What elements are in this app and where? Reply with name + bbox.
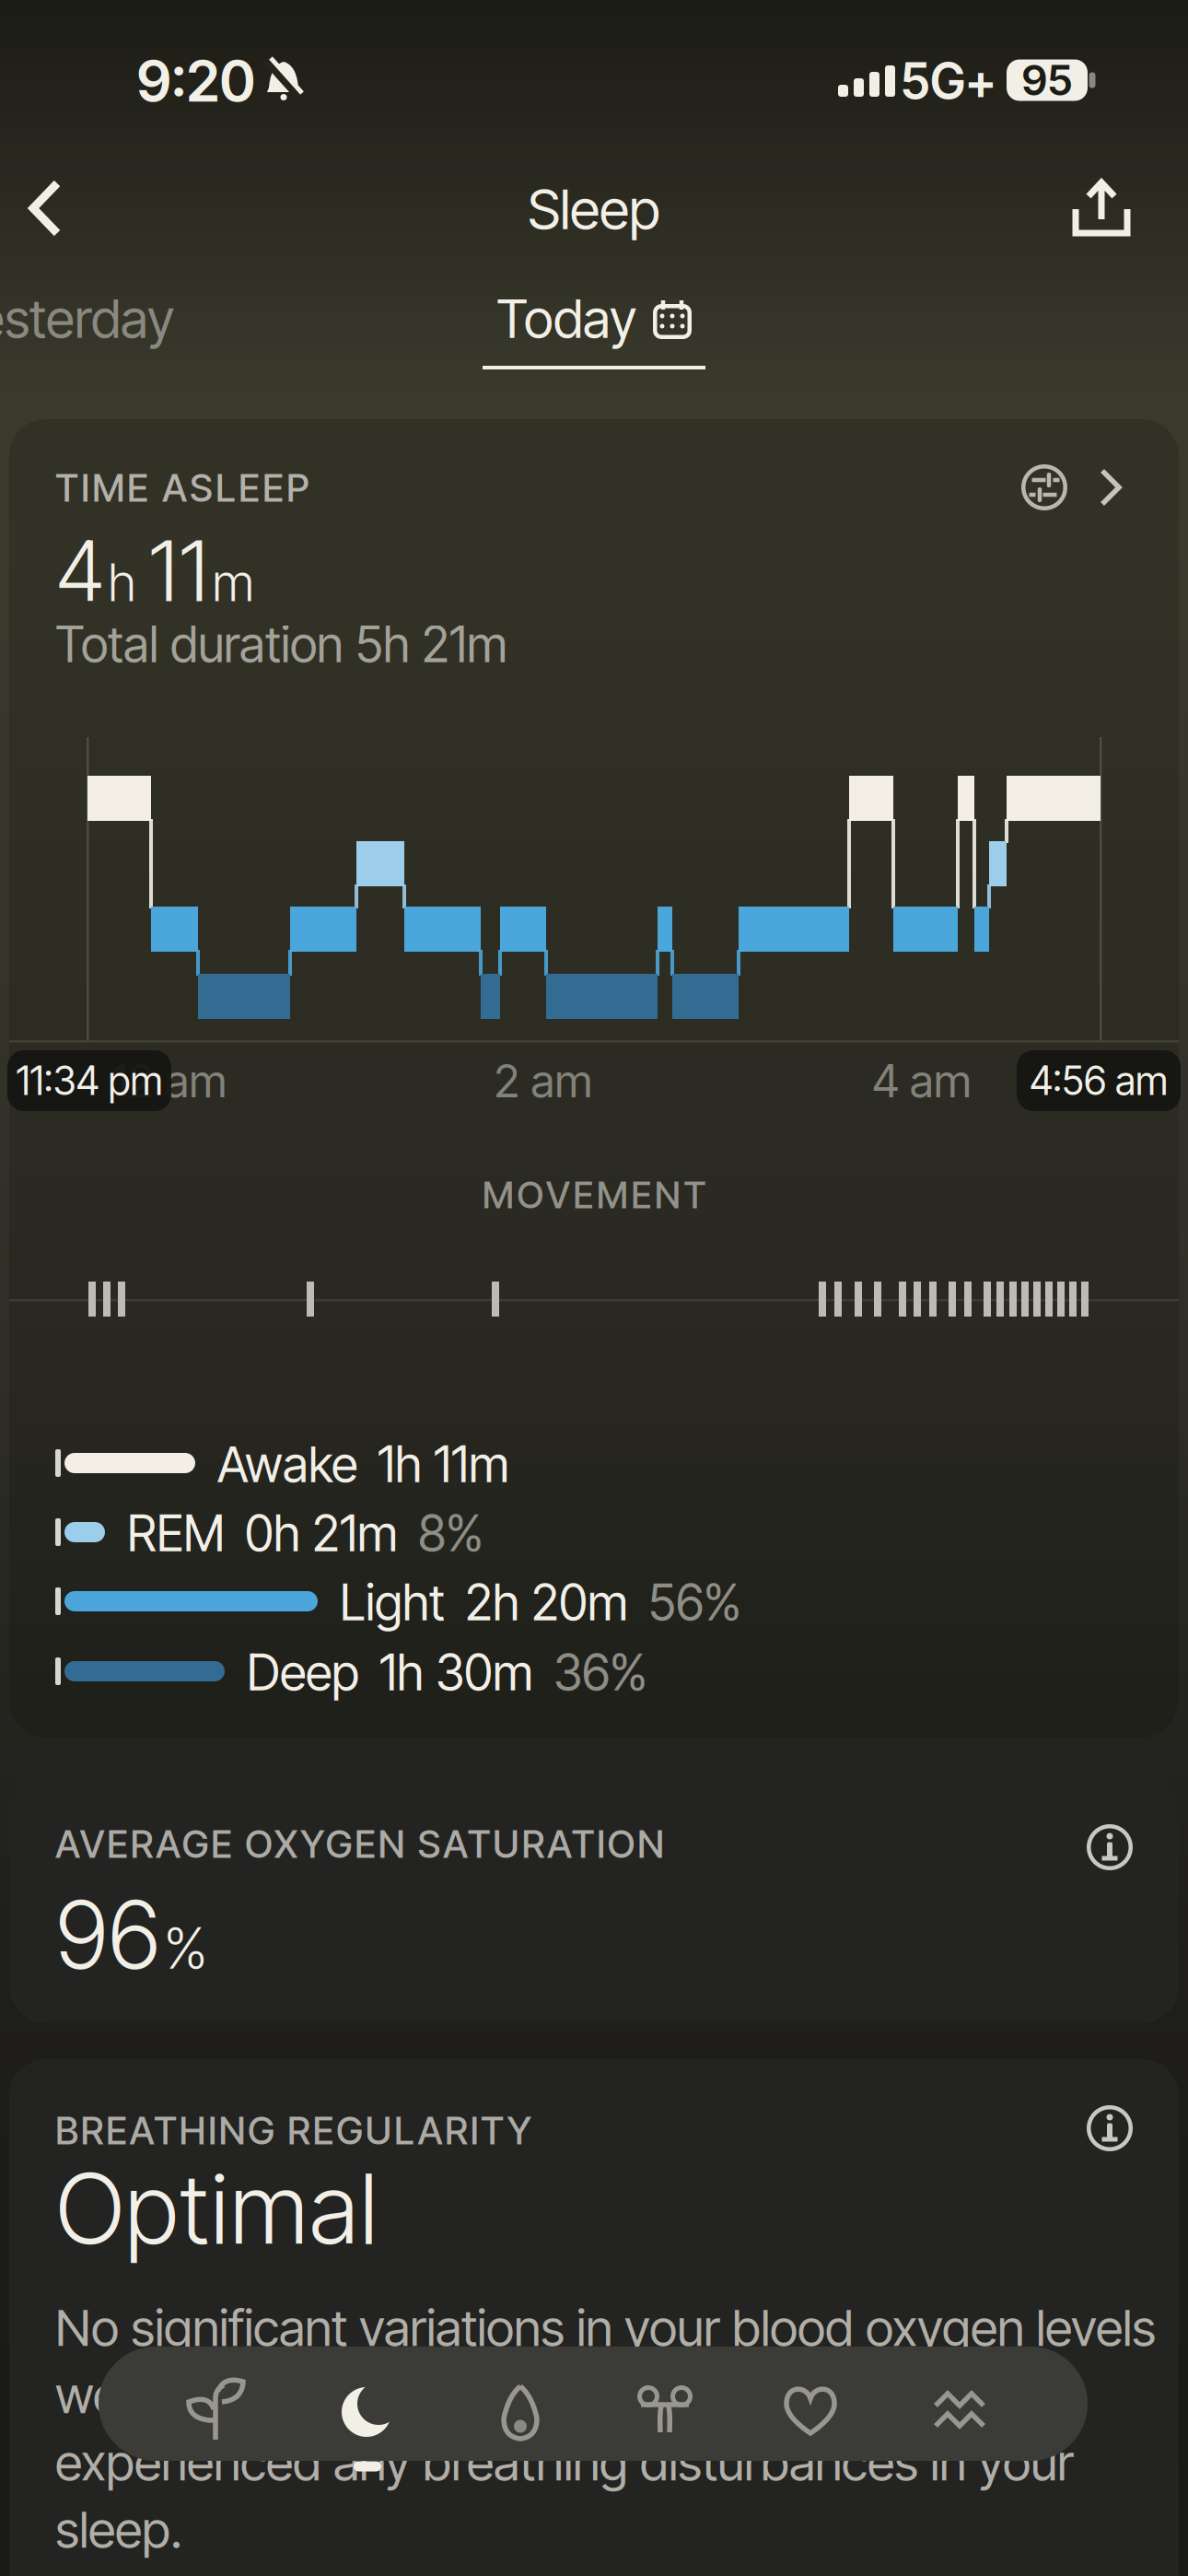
button[interactable]: Back [17, 172, 88, 244]
staticText: 12 am [112, 1054, 227, 1108]
staticText: 1h 30m [379, 1644, 533, 1702]
button[interactable]: Heart [769, 2361, 852, 2463]
staticText: REM [127, 1505, 225, 1562]
staticText: No significant variations in your blood … [55, 2298, 1156, 2357]
staticText: 2h 20m [465, 1574, 628, 1632]
staticText: were detected, and it's unlikely that yo… [55, 2365, 906, 2424]
staticText: Today [496, 288, 636, 350]
button[interactable]: Cycle tracking [623, 2361, 706, 2463]
button[interactable]: Adjust sleep time [1017, 460, 1072, 515]
staticText: h [108, 552, 136, 613]
staticText: 8% [418, 1505, 483, 1562]
button[interactable]: About oxygen saturation [1082, 1820, 1137, 1875]
staticText: 4 am [872, 1054, 972, 1108]
staticText: Yesterday [0, 288, 174, 350]
button[interactable]: Sleep [325, 2361, 408, 2463]
staticText: Light [340, 1574, 445, 1632]
staticText: 36% [553, 1644, 647, 1702]
staticText: 11:34 pm [16, 1057, 163, 1104]
button[interactable]: Today [496, 288, 693, 350]
staticText: MOVEMENT [482, 1173, 706, 1217]
staticText: 2 am [494, 1054, 593, 1108]
button[interactable]: Stress [919, 2361, 1002, 2463]
staticText: TIME ASLEEP [55, 465, 309, 510]
staticText: 95 [1022, 56, 1072, 105]
staticText: AVERAGE OXYGEN SATURATION [55, 1821, 664, 1866]
staticText: 11 [148, 521, 209, 620]
button[interactable]: About breathing regularity [1082, 2101, 1137, 2156]
button[interactable]: Share [1066, 178, 1136, 239]
staticText: 0h 21m [245, 1505, 398, 1562]
staticText: m [212, 552, 254, 613]
staticText: Deep [247, 1644, 359, 1702]
staticText: % [164, 1915, 207, 1981]
button[interactable]: Activity [479, 2361, 562, 2463]
staticText: experienced any breathing disturbances i… [55, 2432, 1074, 2492]
staticText: 9:20 [137, 48, 256, 114]
staticText: sleep. [55, 2500, 182, 2559]
staticText: 96 [55, 1879, 160, 1990]
staticText: BREATHING REGULARITY [55, 2108, 532, 2153]
staticText: 56% [648, 1574, 741, 1632]
staticText: 4:56 am [1030, 1057, 1168, 1104]
staticText: 4 [55, 521, 105, 620]
button[interactable]: Yesterday [0, 288, 174, 350]
button[interactable]: Today [172, 2361, 255, 2463]
staticText: Optimal [55, 2152, 379, 2265]
staticText: 1h 11m [378, 1435, 509, 1493]
staticText: Sleep [528, 177, 660, 242]
staticText: Total duration 5h 21m [55, 615, 507, 673]
button[interactable]: Sleep details [1095, 463, 1128, 511]
staticText: 5G+ [901, 52, 996, 110]
staticText: Awake [217, 1435, 357, 1493]
